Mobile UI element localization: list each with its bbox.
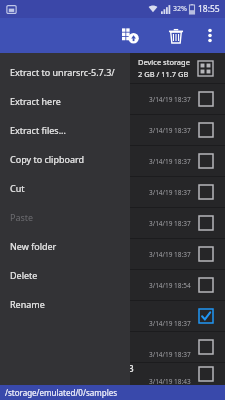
staticText: 18:55 — [198, 3, 220, 15]
button[interactable]: Delete — [0, 260, 130, 289]
button[interactable]: unrarsrc-5.7.3.tar.gz — [0, 301, 225, 331]
button[interactable]: Select item — [199, 154, 213, 168]
staticText: 3/14/19 18:37 — [149, 250, 191, 259]
button[interactable]: Copy to clipboard — [0, 144, 130, 173]
button[interactable]: 3/14/19 18:37 — [0, 146, 225, 176]
button[interactable]: Select item — [199, 92, 213, 106]
staticText: 3/14/19 18:37 — [149, 126, 191, 135]
button[interactable]: 3/14/19 18:37 — [0, 208, 225, 238]
staticText: Extract files... — [10, 124, 66, 136]
staticText: 3/14/19 18:37 — [149, 188, 191, 197]
button[interactable]: Select item — [199, 123, 213, 137]
staticText: Rename — [10, 298, 45, 310]
staticText: Paste — [10, 211, 34, 223]
button[interactable]: 3/14/19 18:37 — [0, 84, 225, 114]
staticText: 2 GB / 11.7 GB — [138, 69, 189, 79]
staticText: New folder — [10, 240, 57, 252]
staticText: Extract here — [10, 95, 61, 107]
button[interactable]: Select item — [199, 340, 213, 354]
staticText: 3/14/19 18:37 — [149, 319, 191, 328]
button[interactable]: Select item — [199, 367, 213, 381]
button[interactable]: Cut — [0, 173, 130, 202]
staticText: unrarsrc-5.7.3.tar.gz — [38, 305, 119, 317]
button[interactable]: Select item — [199, 309, 213, 323]
button[interactable]: Delete — [158, 18, 193, 53]
button[interactable]: New folder — [0, 231, 130, 260]
staticText: Copy to clipboard — [10, 153, 85, 165]
button[interactable]: Extract — [113, 18, 148, 53]
button[interactable]: 3/14/19 18:54 — [0, 270, 225, 300]
button[interactable]: Select item — [199, 185, 213, 199]
button[interactable]: Extract here — [0, 86, 130, 115]
staticText: 3/14/19 18:43 — [149, 377, 191, 385]
staticText: Device storage — [138, 57, 190, 67]
button[interactable]: contents.html — [0, 332, 225, 362]
button[interactable]: 3/14/19 18:37 — [0, 239, 225, 269]
button[interactable]: Select item — [199, 278, 213, 292]
button[interactable]: Select item — [199, 247, 213, 261]
staticText: 32% — [173, 4, 187, 14]
staticText: Notification sound.mp3 — [38, 363, 134, 375]
button[interactable]: Device storage — [0, 53, 225, 83]
staticText: 3/14/19 18:37 — [149, 95, 191, 104]
button[interactable]: 3/14/19 18:37 — [0, 177, 225, 207]
staticText: /storage/emulated/0/samples — [5, 387, 118, 398]
button[interactable]: Notification sound.mp3 — [0, 363, 225, 385]
button[interactable]: Extract to unrarsrc-5.7.3/ — [0, 57, 130, 86]
button[interactable]: Paste — [0, 202, 130, 231]
button[interactable]: More options — [199, 18, 221, 53]
staticText: 3/14/19 18:37 — [149, 157, 191, 166]
staticText: Delete — [10, 269, 38, 281]
button[interactable]: 3/14/19 18:37 — [0, 115, 225, 145]
staticText: 3/14/19 18:54 — [149, 281, 191, 290]
button[interactable]: Extract files... — [0, 115, 130, 144]
staticText: Cut — [10, 182, 25, 194]
staticText: 3/14/19 18:37 — [149, 219, 191, 228]
button[interactable]: Rename — [0, 289, 130, 318]
button[interactable]: Select item — [199, 216, 213, 230]
staticText: Extract to unrarsrc-5.7.3/ — [10, 66, 115, 78]
staticText: 3/14/19 18:37 — [149, 350, 191, 359]
